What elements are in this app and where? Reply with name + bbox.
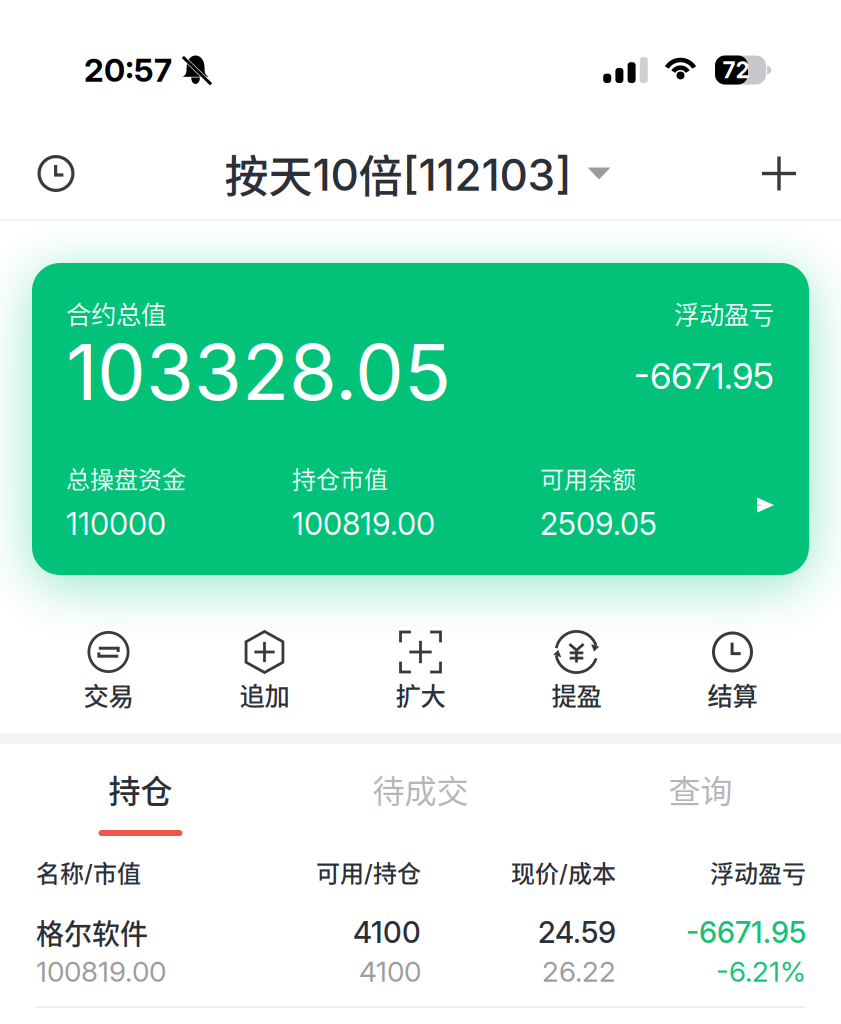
button[interactable]: 合约总值 bbox=[32, 263, 809, 575]
button[interactable]: 查询 bbox=[560, 744, 840, 848]
staticText: 持仓市值 bbox=[292, 461, 388, 495]
staticText: 100819.00 bbox=[36, 954, 166, 988]
staticText: 总操盘资金 bbox=[66, 461, 186, 495]
staticText: 持仓 bbox=[108, 766, 172, 812]
staticText: 4100 bbox=[353, 914, 421, 950]
button[interactable]: 持仓 bbox=[0, 744, 280, 848]
staticText: 扩大 bbox=[395, 676, 445, 713]
staticText: 103328.05 bbox=[66, 325, 451, 419]
staticText: 交易 bbox=[83, 676, 133, 713]
staticText: 可用余额 bbox=[540, 461, 636, 495]
button[interactable]: 按天10倍[112103] bbox=[224, 137, 610, 209]
staticText: 浮动盈亏 bbox=[674, 295, 774, 331]
button[interactable]: History bbox=[20, 137, 92, 209]
button[interactable]: 交易 bbox=[30, 630, 186, 732]
staticText: 查询 bbox=[668, 766, 732, 812]
button[interactable]: 格尔软件 bbox=[0, 896, 841, 1006]
button[interactable]: 提盈 bbox=[498, 630, 654, 732]
staticText: -6671.95 bbox=[634, 354, 774, 398]
staticText: 浮动盈亏 bbox=[710, 855, 806, 889]
staticText: 2509.05 bbox=[540, 505, 657, 542]
staticText: 提盈 bbox=[551, 676, 601, 713]
staticText: 26.22 bbox=[542, 954, 616, 988]
staticText: -6.21% bbox=[716, 954, 806, 988]
staticText: 110000 bbox=[66, 505, 166, 542]
staticText: 合约总值 bbox=[66, 295, 166, 331]
button[interactable]: Add bbox=[743, 137, 815, 209]
staticText: 名称/市值 bbox=[36, 855, 141, 889]
staticText: 结算 bbox=[707, 676, 757, 713]
staticText: 待成交 bbox=[372, 766, 468, 812]
staticText: 20:57 bbox=[84, 51, 172, 89]
staticText: 24.59 bbox=[538, 914, 616, 950]
staticText: 现价/成本 bbox=[511, 855, 616, 889]
staticText: 72 bbox=[722, 56, 749, 84]
button[interactable]: 结算 bbox=[654, 630, 810, 732]
button[interactable]: 追加 bbox=[186, 630, 342, 732]
staticText: 4100 bbox=[359, 954, 421, 988]
staticText: 按天10倍[112103] bbox=[224, 142, 571, 205]
staticText: 100819.00 bbox=[292, 505, 435, 542]
button[interactable]: 待成交 bbox=[280, 744, 560, 848]
staticText: 追加 bbox=[239, 676, 289, 713]
staticText: -6671.95 bbox=[686, 914, 806, 950]
staticText: 格尔软件 bbox=[36, 912, 148, 952]
staticText: 可用/持仓 bbox=[316, 855, 421, 889]
button[interactable]: 扩大 bbox=[342, 630, 498, 732]
